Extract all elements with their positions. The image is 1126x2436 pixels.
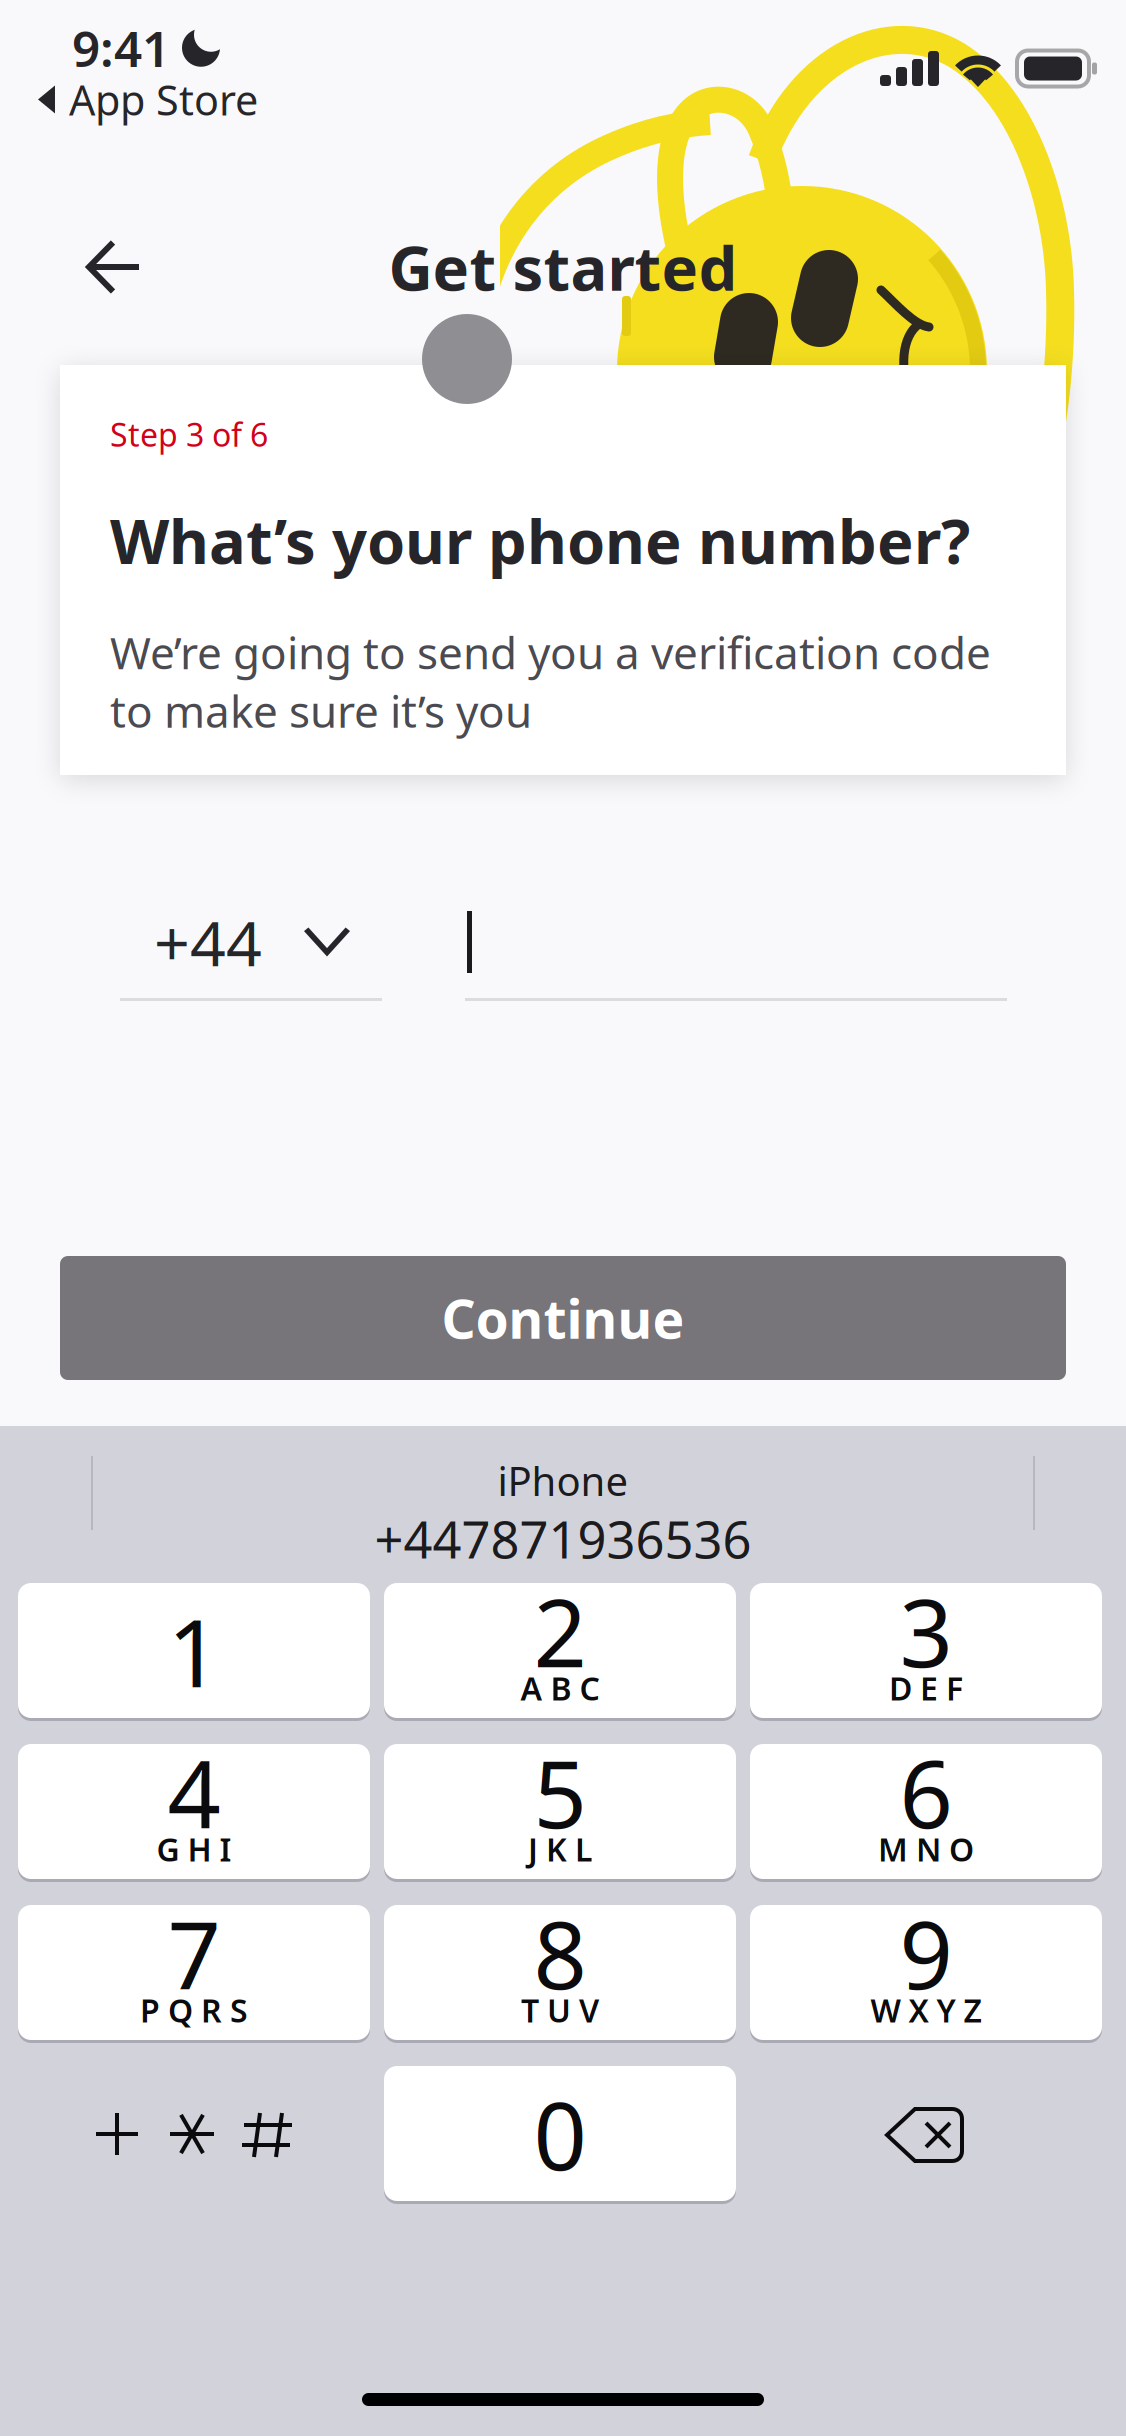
button[interactable]: 2 (384, 1583, 736, 1721)
button[interactable]: Back (62, 219, 166, 315)
staticText: G H I (156, 1828, 231, 1870)
staticText: 8 (533, 1891, 586, 2015)
button[interactable]: Continue (60, 1256, 1066, 1380)
staticText: Get started (388, 226, 737, 308)
staticText: We’re going to send you a verification c… (110, 623, 991, 740)
button[interactable]: 8 (384, 1905, 736, 2043)
button[interactable]: Delete (750, 2067, 1102, 2202)
staticText: T U V (521, 1989, 599, 2031)
staticText: Step 3 of 6 (110, 413, 268, 455)
button[interactable]: 9 (750, 1905, 1102, 2043)
staticText: 9:41 (72, 15, 170, 80)
staticText: J K L (528, 1828, 592, 1870)
button[interactable]: 5 (384, 1744, 736, 1882)
button[interactable]: 3 (750, 1583, 1102, 1721)
button[interactable]: 7 (18, 1905, 370, 2043)
button[interactable]: 6 (750, 1744, 1102, 1882)
staticText: Continue (441, 1283, 684, 1353)
staticText: 1 (167, 1589, 220, 1713)
button[interactable]: Symbols (18, 2067, 370, 2202)
button[interactable]: 1 (18, 1583, 370, 1721)
button[interactable]: 4 (18, 1744, 370, 1882)
staticText: App Store (69, 72, 258, 127)
staticText: D E F (889, 1667, 963, 1709)
staticText: 4 (167, 1730, 220, 1854)
button[interactable]: App Store (30, 60, 266, 139)
button[interactable]: 0 (384, 2066, 736, 2204)
staticText: P Q R S (140, 1989, 248, 2031)
staticText: 9 (899, 1891, 952, 2015)
staticText: 5 (533, 1730, 586, 1854)
staticText: 0 (533, 2072, 586, 2196)
staticText: What’s your phone number? (110, 499, 970, 581)
button[interactable]: +44 (120, 886, 382, 1001)
staticText: 6 (899, 1730, 952, 1854)
staticText: 2 (533, 1569, 586, 1693)
staticText: M N O (878, 1828, 974, 1870)
staticText: +447871936536 (374, 1505, 751, 1572)
staticText: iPhone (497, 1454, 628, 1507)
staticText: 7 (167, 1891, 220, 2015)
staticText: A B C (520, 1667, 599, 1709)
staticText: 3 (899, 1569, 952, 1693)
staticText: W X Y Z (870, 1989, 981, 2031)
staticText: +44 (154, 900, 262, 984)
